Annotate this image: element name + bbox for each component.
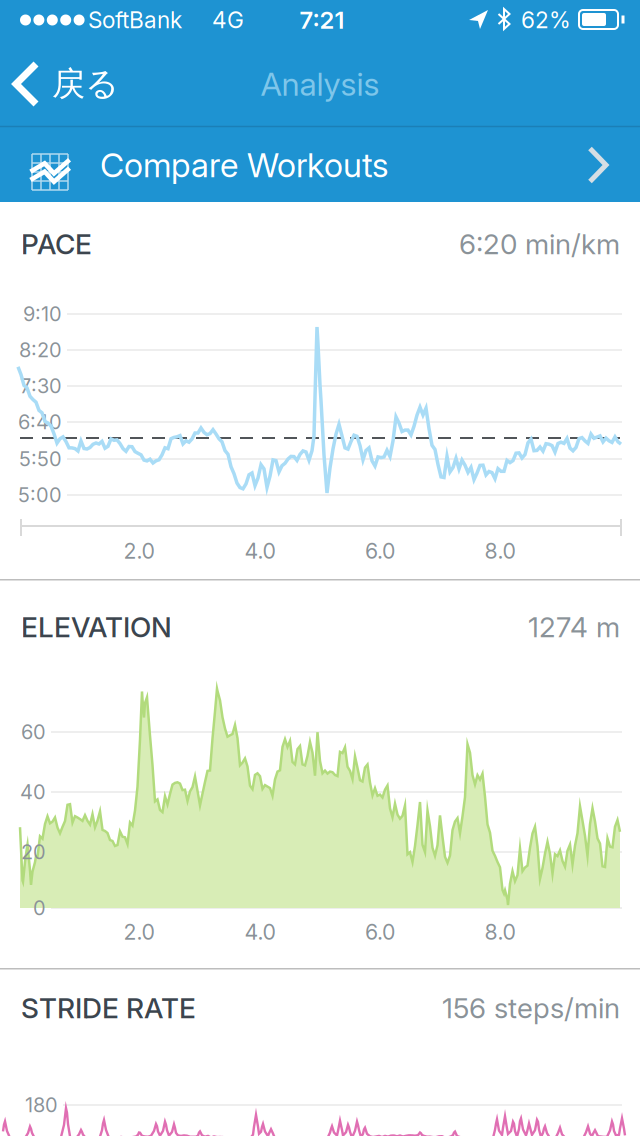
- button[interactable]: Compare Workouts: [0, 127, 640, 202]
- staticText: 2.0: [123, 538, 154, 564]
- staticText: 180: [25, 1093, 58, 1117]
- staticText: 6.0: [365, 538, 395, 564]
- staticText: 8.0: [484, 919, 515, 945]
- staticText: 8:20: [19, 338, 62, 362]
- staticText: PACE: [21, 227, 92, 260]
- staticText: 戻る: [52, 63, 119, 104]
- staticText: 2.0: [123, 919, 154, 945]
- staticText: Compare Workouts: [100, 145, 389, 185]
- staticText: ELEVATION: [21, 610, 172, 643]
- staticText: 156 steps/min: [442, 991, 620, 1024]
- staticText: 4G: [212, 7, 244, 33]
- staticText: 7:21: [299, 6, 344, 34]
- staticText: STRIDE RATE: [21, 991, 196, 1024]
- staticText: 6.0: [365, 919, 395, 945]
- staticText: 7:30: [20, 374, 62, 398]
- staticText: 5:00: [18, 483, 62, 507]
- staticText: SoftBank: [88, 7, 182, 33]
- staticText: 6:40: [18, 410, 62, 434]
- staticText: 4.0: [244, 919, 275, 945]
- staticText: 40: [20, 780, 46, 804]
- staticText: 9:10: [23, 302, 62, 326]
- staticText: 8.0: [484, 538, 515, 564]
- staticText: 1274 m: [528, 610, 620, 643]
- staticText: 4.0: [244, 538, 275, 564]
- staticText: 62%: [521, 7, 571, 33]
- staticText: 6:20 min/km: [459, 227, 620, 260]
- staticText: 60: [21, 720, 46, 744]
- button[interactable]: Back: [0, 49, 140, 119]
- staticText: Analysis: [260, 65, 379, 103]
- staticText: 5:50: [19, 447, 62, 471]
- staticText: 0: [33, 896, 46, 920]
- staticText: 20: [21, 840, 46, 864]
